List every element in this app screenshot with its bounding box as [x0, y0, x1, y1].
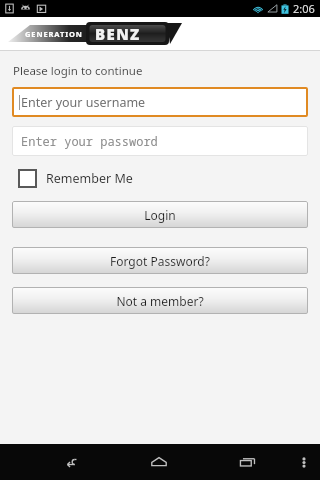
staticText: BENZ	[95, 24, 141, 44]
button[interactable]: Remember Me	[18, 169, 133, 188]
button[interactable]: Enter your password	[12, 126, 308, 156]
button[interactable]: Not a member?	[12, 287, 308, 314]
button[interactable]: Home	[114, 444, 203, 480]
button[interactable]: Enter your username	[12, 87, 308, 117]
staticText: Remember Me	[46, 170, 133, 187]
staticText: 2:06	[293, 1, 315, 16]
staticText: Login	[144, 207, 176, 223]
staticText: Please login to continue	[13, 63, 143, 79]
staticText: Enter your password	[21, 133, 158, 149]
staticText: GENERATION	[25, 29, 83, 39]
button[interactable]: Login	[12, 201, 308, 228]
button[interactable]: More options	[292, 444, 316, 480]
button[interactable]: Forgot Password?	[12, 247, 308, 274]
staticText: Enter your username	[21, 94, 146, 111]
button[interactable]: Recent apps	[203, 444, 292, 480]
button[interactable]: Back	[26, 444, 114, 480]
staticText: Forgot Password?	[110, 253, 210, 269]
staticText: Not a member?	[116, 293, 204, 309]
